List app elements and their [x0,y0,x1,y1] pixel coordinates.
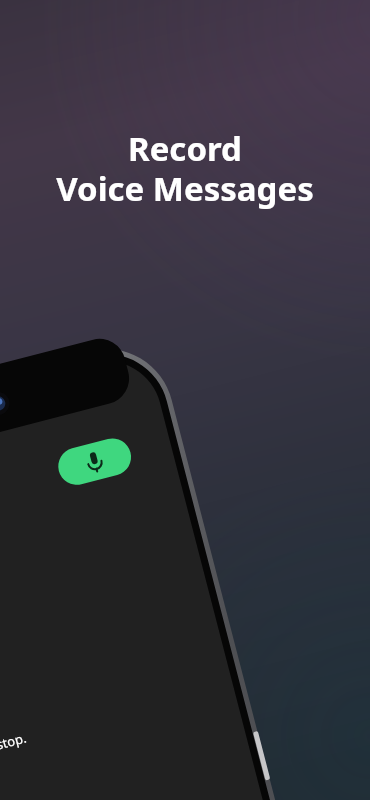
staticText: stop. [0,728,29,754]
staticText: Record Voice Messages [56,126,314,211]
